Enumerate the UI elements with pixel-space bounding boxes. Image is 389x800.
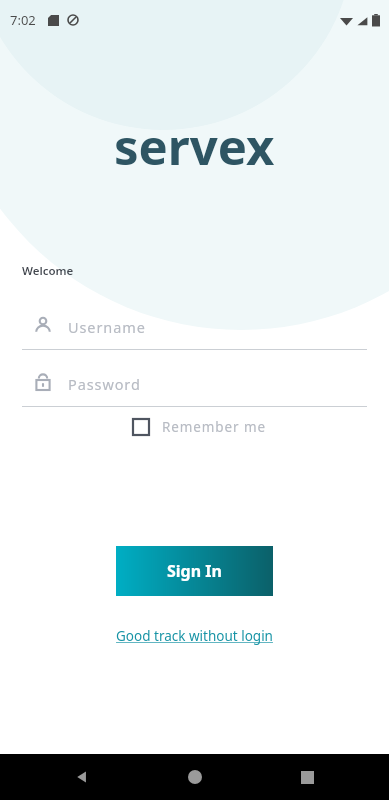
button[interactable]: Remember me — [130, 416, 269, 438]
staticText: Sign In — [167, 560, 222, 582]
staticText: Password — [68, 374, 141, 394]
staticText: Welcome — [22, 263, 74, 279]
button[interactable]: Password — [0, 363, 389, 407]
staticText: Good track without login — [116, 627, 273, 645]
button[interactable]: Recent apps — [287, 757, 327, 797]
staticText: servex — [114, 113, 275, 180]
staticText: Remember me — [162, 418, 267, 436]
staticText: 7:02 — [10, 11, 36, 29]
button[interactable]: Sign In — [116, 546, 273, 596]
button[interactable]: Username — [0, 306, 389, 350]
button[interactable]: Home — [175, 757, 215, 797]
staticText: Username — [68, 317, 146, 337]
button[interactable]: Back — [62, 757, 102, 797]
button[interactable]: Good track without login — [110, 624, 279, 648]
